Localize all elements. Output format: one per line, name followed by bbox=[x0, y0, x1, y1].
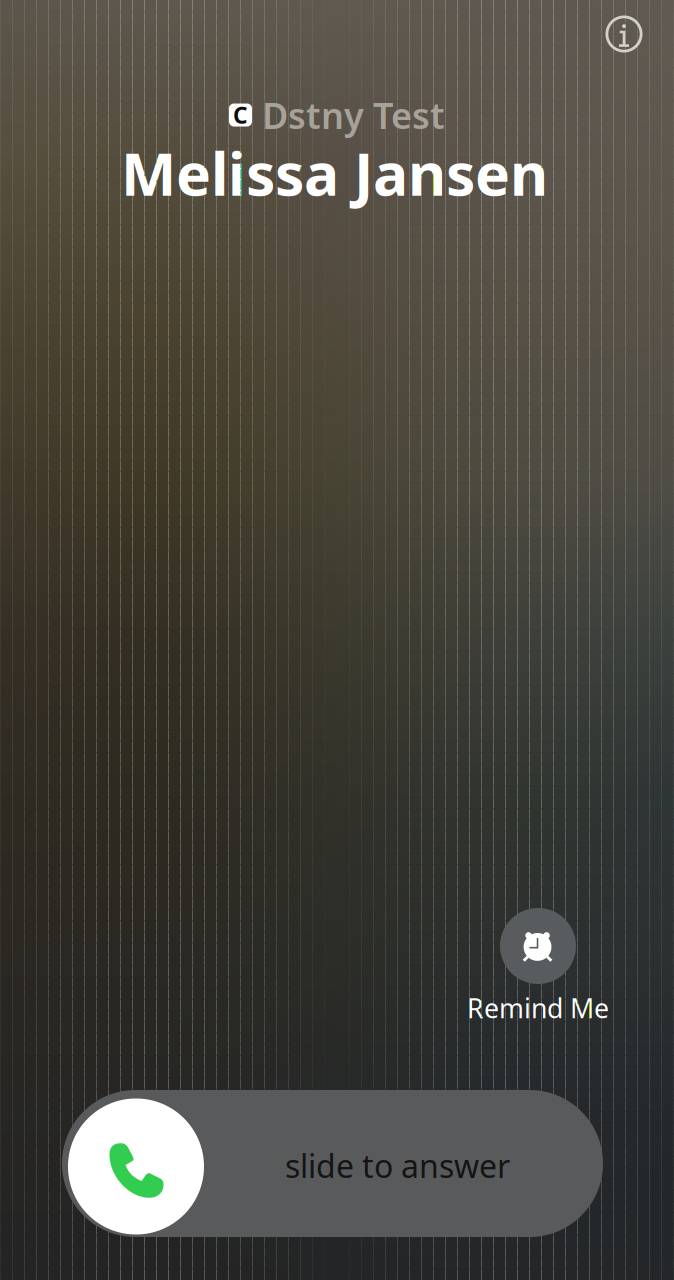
button[interactable]: Remind Me bbox=[438, 908, 638, 1023]
staticText: Dstny Test bbox=[262, 91, 445, 139]
button[interactable]: slide to answer bbox=[62, 1090, 603, 1237]
button[interactable]: Call info bbox=[594, 4, 654, 64]
staticText: Melissa Jansen bbox=[121, 134, 548, 212]
staticText: slide to answer bbox=[285, 1144, 510, 1187]
staticText: Remind Me bbox=[467, 990, 609, 1026]
staticText: C bbox=[233, 100, 248, 130]
